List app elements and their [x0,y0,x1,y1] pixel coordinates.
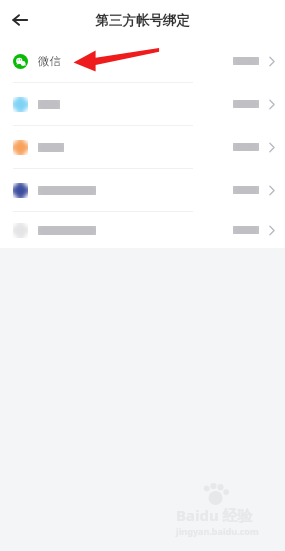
button[interactable] [0,126,285,168]
staticText: 第三方帐号绑定 [95,12,190,29]
staticText: jingyan.baidu.com [176,525,259,537]
button[interactable] [0,169,285,211]
button[interactable]: 微信 [0,40,285,82]
button[interactable] [0,83,285,125]
button[interactable] [0,212,285,248]
button[interactable]: Back [0,0,40,40]
staticText: Baidu 经验 [176,505,253,525]
staticText: 微信 [38,54,61,68]
